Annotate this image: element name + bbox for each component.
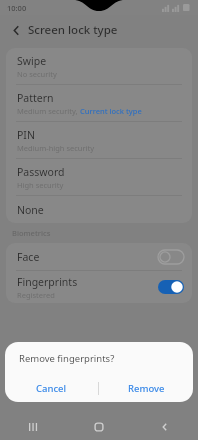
staticText: Pattern [17,91,54,105]
button[interactable]: Off [158,250,184,264]
button[interactable]: PIN [6,122,192,158]
staticText: Biometrics [12,228,51,238]
button[interactable]: None [6,196,192,223]
button[interactable]: Fingerprints [6,271,192,303]
staticText: Swipe [17,54,47,68]
button[interactable]: Face [6,243,192,270]
staticText: Cancel [36,382,67,395]
staticText: Medium-high security [17,143,95,153]
staticText: Remove fingerprints? [19,352,115,365]
staticText: Screen lock type [28,22,118,38]
staticText: High security [17,180,64,190]
button[interactable]: Remove [99,375,193,402]
staticText: Remove [128,382,165,395]
button[interactable]: Pattern [6,85,192,121]
button[interactable]: Password [6,159,192,195]
button[interactable]: Recent apps [0,413,66,440]
staticText: 10:00 [7,3,27,13]
staticText: Face [17,250,40,264]
button[interactable]: Cancel [5,375,98,402]
staticText: Fingerprints [17,275,78,289]
staticText: None [17,203,44,217]
staticText: Current lock type [80,106,142,116]
staticText: Medium security, [17,106,80,116]
staticText: Registered [17,290,55,300]
button[interactable]: Swipe [6,48,192,84]
staticText: Password [17,165,65,179]
staticText: No security [17,69,57,79]
button[interactable]: Home [66,413,132,440]
button[interactable]: Back [132,413,198,440]
staticText: PIN [17,128,35,142]
button[interactable]: On [158,280,184,294]
button[interactable]: Navigate up [6,20,26,40]
